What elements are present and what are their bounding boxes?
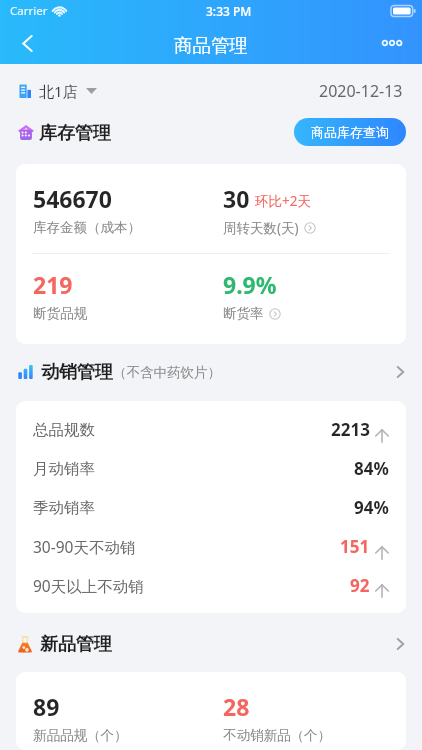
button[interactable]: 219 xyxy=(16,254,207,344)
staticText: 219 xyxy=(33,269,73,300)
staticText: 总品规数 xyxy=(33,420,95,440)
staticText: 断货品规 xyxy=(33,305,87,322)
staticText: 月动销率 xyxy=(33,459,95,479)
staticText: 季动销率 xyxy=(33,498,95,518)
button[interactable]: Back xyxy=(9,25,46,62)
button[interactable]: 新品管理 xyxy=(0,630,422,658)
staticText: 30-90天不动销 xyxy=(33,536,136,557)
button[interactable]: 季动销率 xyxy=(33,488,389,527)
staticText: （不含中药饮片） xyxy=(113,364,221,381)
staticText: 30 xyxy=(223,183,250,214)
staticText: 151 xyxy=(340,535,370,558)
button[interactable]: More options xyxy=(373,24,411,62)
button[interactable]: 9.9% xyxy=(207,254,406,344)
staticText: 28 xyxy=(223,691,250,722)
staticText: 商品管理 xyxy=(174,34,248,57)
staticText: 2020-12-13 xyxy=(319,80,403,102)
staticText: 环比+2天 xyxy=(255,192,311,210)
button[interactable]: 30 xyxy=(207,164,406,253)
staticText: 北1店 xyxy=(39,81,78,101)
button[interactable]: 30-90天不动销 xyxy=(33,527,389,566)
staticText: 84% xyxy=(354,457,389,480)
staticText: 动销管理 xyxy=(41,361,113,384)
button[interactable]: 月动销率 xyxy=(33,449,389,488)
staticText: 9.9% xyxy=(223,269,277,300)
button[interactable]: 546670 xyxy=(16,164,207,253)
staticText: 新品品规（个） xyxy=(33,727,128,744)
staticText: 库存管理 xyxy=(39,122,111,145)
staticText: 2213 xyxy=(331,418,370,441)
staticText: 商品库存查询 xyxy=(311,124,389,140)
staticText: 库存金额（成本） xyxy=(33,219,141,236)
button[interactable]: 动销管理 xyxy=(0,358,422,386)
staticText: 断货率 xyxy=(223,305,264,322)
staticText: 3:33 PM xyxy=(206,3,252,19)
staticText: Carrier xyxy=(10,3,48,19)
staticText: 89 xyxy=(33,691,60,722)
button[interactable]: 商品库存查询 xyxy=(294,118,406,146)
staticText: 90天以上不动销 xyxy=(33,575,144,596)
button[interactable]: 28 xyxy=(207,672,406,750)
staticText: 546670 xyxy=(33,183,112,214)
button[interactable]: 90天以上不动销 xyxy=(33,566,389,604)
staticText: 92 xyxy=(350,574,370,597)
button[interactable]: 北1店 xyxy=(19,81,97,101)
staticText: 不动销新品（个） xyxy=(223,727,331,744)
staticText: 94% xyxy=(354,496,389,519)
button[interactable]: 总品规数 xyxy=(33,410,389,449)
staticText: 新品管理 xyxy=(40,633,112,656)
button[interactable]: 89 xyxy=(16,672,207,750)
staticText: 周转天数(天) xyxy=(223,219,299,237)
